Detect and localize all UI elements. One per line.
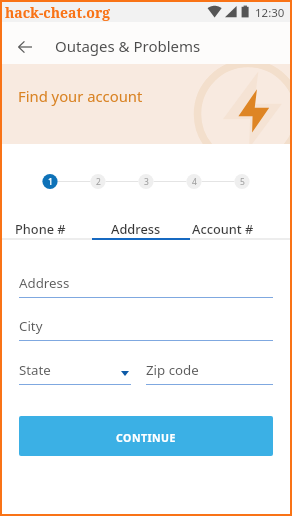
staticText: Find your account	[18, 86, 143, 106]
button[interactable]: Address	[88, 218, 184, 239]
staticText: 5	[240, 176, 245, 188]
staticText: 2	[96, 176, 101, 188]
staticText: State	[19, 361, 51, 379]
staticText: City	[19, 317, 43, 335]
staticText: CONTINUE	[116, 431, 176, 445]
button[interactable]: Step 1	[41, 173, 59, 191]
button[interactable]: State	[19, 361, 131, 383]
staticText: Phone #	[15, 220, 66, 237]
button[interactable]: Step 5	[233, 173, 251, 191]
staticText: 12:30	[255, 5, 285, 21]
button[interactable]: Back	[6, 28, 43, 65]
staticText: Address	[111, 220, 161, 237]
button[interactable]: Step 4	[185, 173, 203, 191]
button[interactable]: Step 2	[89, 173, 107, 191]
staticText: 1	[48, 176, 53, 188]
button[interactable]: Zip code	[146, 361, 273, 383]
button[interactable]: Phone #	[0, 218, 88, 239]
button[interactable]: City	[19, 317, 273, 339]
staticText: hack-cheat.org	[5, 3, 111, 22]
button[interactable]: CONTINUE	[19, 416, 273, 456]
button[interactable]: Account #	[175, 218, 271, 239]
button[interactable]: Step 3	[137, 173, 155, 191]
staticText: 4	[192, 176, 197, 188]
staticText: 3	[144, 176, 149, 188]
button[interactable]: Address	[19, 274, 273, 296]
staticText: Zip code	[146, 361, 199, 379]
staticText: Address	[19, 274, 70, 292]
staticText: Account #	[192, 220, 254, 237]
staticText: Outages & Problems	[55, 36, 201, 56]
